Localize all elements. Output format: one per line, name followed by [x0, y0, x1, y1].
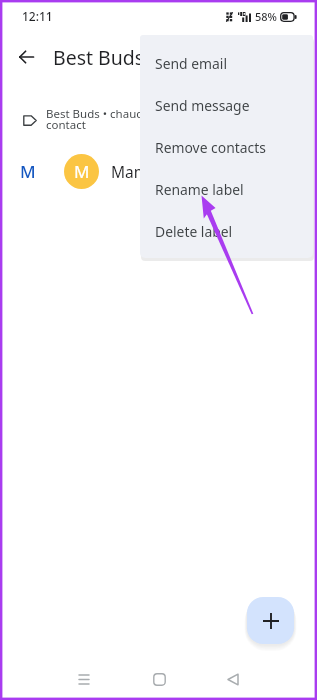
staticText: Best Buds: [53, 44, 145, 71]
button[interactable]: M: [0, 147, 317, 195]
staticText: Rename label: [155, 180, 244, 199]
staticText: Best Buds • chaudhari.s: [46, 106, 174, 122]
button[interactable]: Delete label: [140, 210, 313, 252]
button[interactable]: Back: [6, 37, 46, 77]
button[interactable]: Send email: [140, 42, 313, 84]
staticText: contact: [46, 117, 86, 133]
button[interactable]: Rename label: [140, 168, 313, 210]
staticText: 58%: [255, 9, 277, 24]
staticText: Delete label: [155, 222, 233, 241]
button[interactable]: Home: [138, 661, 180, 697]
button[interactable]: Send message: [140, 84, 313, 126]
staticText: Send email: [155, 54, 227, 73]
button[interactable]: Best Buds • chaudhari.s: [0, 103, 317, 137]
staticText: Remove contacts: [155, 138, 266, 157]
staticText: M: [74, 160, 90, 183]
staticText: 12:11: [22, 8, 53, 24]
staticText: Mamma: [111, 161, 172, 182]
button[interactable]: Remove contacts: [140, 126, 313, 168]
button[interactable]: Create contact: [247, 597, 294, 644]
staticText: Send message: [155, 96, 250, 115]
button[interactable]: Back: [212, 661, 254, 697]
staticText: M: [20, 160, 36, 183]
button[interactable]: Recent apps: [63, 661, 105, 697]
